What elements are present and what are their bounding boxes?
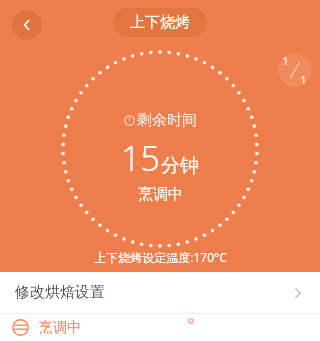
staticText: 15 [121,135,160,181]
staticText: 1 [282,53,289,68]
button[interactable]: 上下烧烤 [113,8,207,37]
staticText: 烹调中 [138,185,183,204]
staticText: 1 [300,72,307,87]
staticText: 烹调中 [39,319,81,337]
staticText: 上下烧烤 [130,13,190,32]
button[interactable]: 页码 1 / 1 [278,53,312,87]
button[interactable]: 修改烘焙设置 [0,272,320,313]
staticText: 修改烘焙设置 [15,283,105,302]
button[interactable]: 返回 [12,10,42,40]
staticText: 上下烧烤设定温度:170°C [94,249,227,265]
button[interactable]: 烹调中 [0,314,320,341]
staticText: 剩余时间 [137,111,197,130]
staticText: 分钟 [161,154,199,178]
